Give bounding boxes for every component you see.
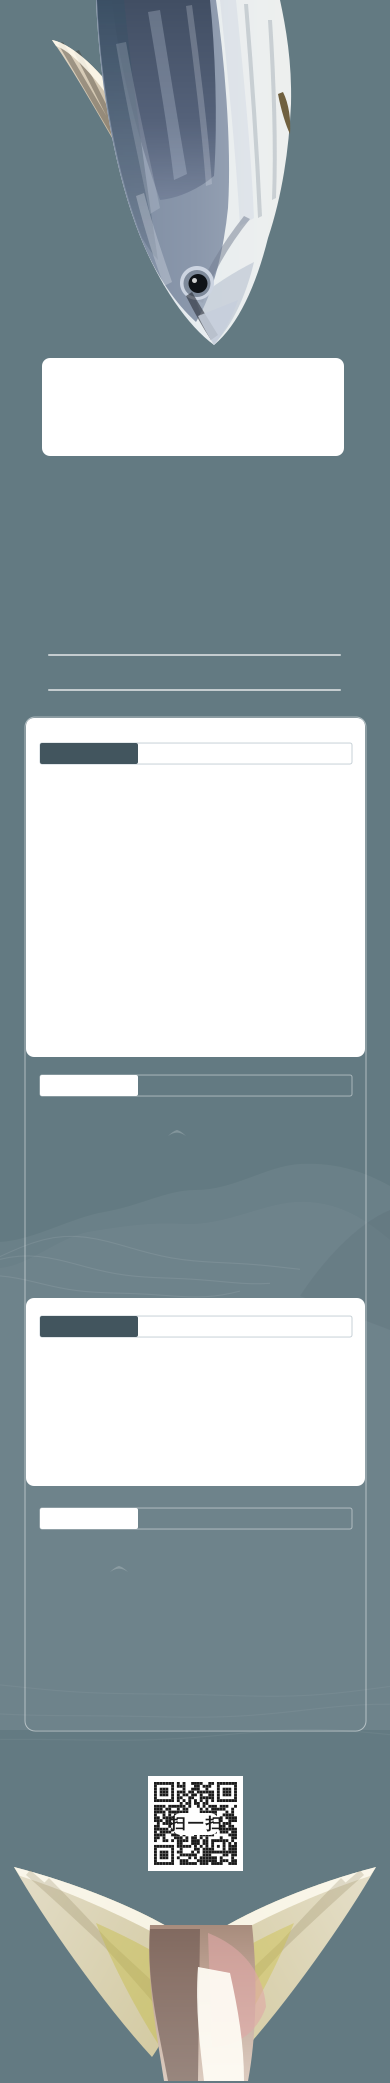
button[interactable] xyxy=(40,1075,352,1096)
button[interactable] xyxy=(40,1508,352,1529)
staticText: 扫 xyxy=(205,1814,221,1834)
staticText: 一 xyxy=(187,1814,203,1834)
button[interactable]: Scan QR code xyxy=(148,1776,243,1871)
button[interactable] xyxy=(42,358,344,456)
button[interactable] xyxy=(40,743,352,764)
button[interactable] xyxy=(40,1316,352,1337)
staticText: 扫 xyxy=(169,1814,185,1834)
